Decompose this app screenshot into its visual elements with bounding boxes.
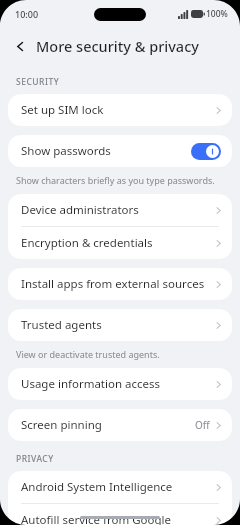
staticText: Install apps from external sources <box>21 276 214 292</box>
staticText: Set up SIM lock <box>21 102 214 118</box>
staticText: Show characters briefly as you type pass… <box>16 174 215 186</box>
staticText: PRIVACY <box>16 453 54 465</box>
staticText: More security & privacy <box>36 36 199 56</box>
button[interactable]: Android System Intelligence <box>8 471 232 503</box>
button[interactable]: Install apps from external sources <box>8 268 232 300</box>
button[interactable]: Autofill service from Google <box>8 504 232 525</box>
staticText: SECURITY <box>16 76 60 88</box>
staticText: Screen pinning <box>21 417 195 433</box>
staticText: Show passwords <box>21 143 191 159</box>
button[interactable]: Encryption & credentials <box>8 227 232 259</box>
button[interactable]: Back <box>7 33 33 59</box>
button[interactable]: Show passwords <box>8 135 232 167</box>
button[interactable]: Set up SIM lock <box>8 94 232 126</box>
button[interactable]: Usage information access <box>8 368 232 400</box>
staticText: Android System Intelligence <box>21 479 214 495</box>
button[interactable]: Show passwords toggle <box>191 143 221 160</box>
staticText: Encryption & credentials <box>21 235 214 251</box>
staticText: View or deactivate trusted agents. <box>16 348 160 360</box>
staticText: 10:00 <box>15 8 39 20</box>
staticText: Usage information access <box>21 376 214 392</box>
button[interactable]: Device administrators <box>8 194 232 226</box>
staticText: Device administrators <box>21 202 214 218</box>
button[interactable]: Trusted agents <box>8 309 232 341</box>
staticText: Trusted agents <box>21 317 214 333</box>
button[interactable]: Screen pinning <box>8 409 232 441</box>
staticText: 100% <box>206 8 228 20</box>
staticText: Autofill service from Google <box>21 512 214 525</box>
staticText: Off <box>195 418 210 432</box>
